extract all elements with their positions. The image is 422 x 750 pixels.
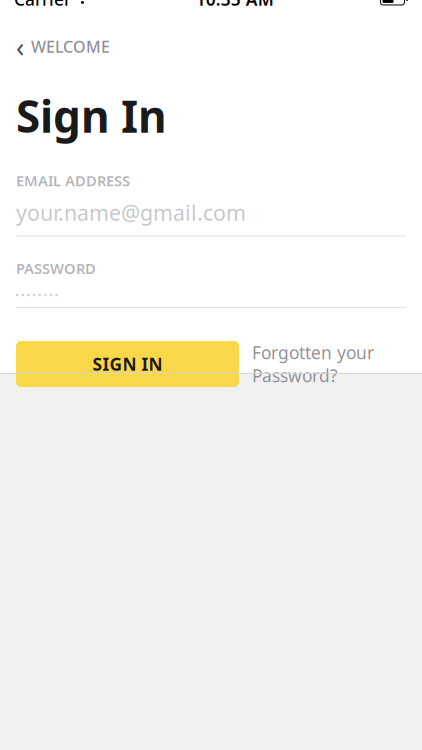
- button[interactable]: Forgotten your Password?: [239, 341, 387, 387]
- staticText: WELCOME: [31, 36, 110, 57]
- staticText: your.name@gmail.com: [16, 198, 246, 227]
- button[interactable]: Back to Welcome: [16, 24, 110, 69]
- staticText: Forgotten your Password?: [252, 341, 374, 387]
- staticText: EMAIL ADDRESS: [16, 171, 130, 190]
- staticText: Sign In: [16, 86, 167, 145]
- button[interactable]: SIGN IN: [16, 341, 239, 387]
- staticText: Carrier: [14, 0, 71, 10]
- staticText: SIGN IN: [92, 353, 162, 376]
- staticText: PASSWORD: [16, 259, 96, 278]
- staticText: 10:35 AM: [196, 0, 274, 10]
- staticText: ‹: [16, 29, 24, 64]
